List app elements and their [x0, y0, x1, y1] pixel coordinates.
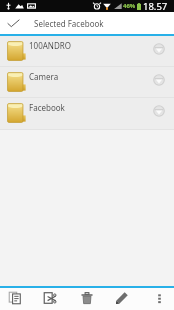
staticText: 100ANDRO [29, 40, 71, 51]
button[interactable]: Select all [0, 12, 26, 34]
button[interactable]: Expand [148, 69, 170, 91]
staticText: 46% [123, 2, 136, 10]
button[interactable]: 100ANDRO [0, 36, 174, 67]
button[interactable]: Delete [72, 288, 102, 310]
staticText: Selected Facebook [34, 18, 104, 29]
staticText: Facebook [29, 102, 65, 113]
staticText: 18.57 [143, 0, 168, 12]
button[interactable]: Copy [0, 288, 30, 310]
button[interactable]: Edit [107, 288, 137, 310]
button[interactable]: More options [144, 288, 174, 310]
button[interactable]: Camera [0, 67, 174, 98]
button[interactable]: Expand [148, 38, 170, 60]
button[interactable]: Expand [148, 100, 170, 122]
button[interactable]: Facebook [0, 98, 174, 130]
button[interactable]: Cut [35, 288, 65, 310]
staticText: Camera [29, 71, 59, 82]
